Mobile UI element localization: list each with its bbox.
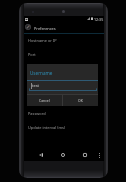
button[interactable]: Home [57,149,69,161]
staticText: Port [28,52,36,57]
staticText: Hostname or IP [28,38,57,43]
button[interactable]: Cancel [27,95,62,106]
button[interactable]: Hostname or IP [24,33,104,47]
button[interactable]: Back [35,149,47,161]
button[interactable]: Password [24,106,104,120]
staticText: test [32,83,40,88]
button[interactable]: Port [24,47,104,61]
staticText: Cancel [39,98,50,103]
button[interactable]: Update interval (ms) [24,120,104,134]
staticText: 12:35 [94,17,104,22]
staticText: Update interval (ms) [28,125,66,130]
button[interactable]: Username [24,61,104,75]
staticText: Password [28,111,46,116]
staticText: Preferences [34,26,56,31]
button[interactable]: OK [63,95,98,106]
staticText: Username [30,70,53,76]
button[interactable]: Recent apps [79,149,91,161]
staticText: OK [78,98,83,103]
button[interactable]: More options [93,149,105,161]
